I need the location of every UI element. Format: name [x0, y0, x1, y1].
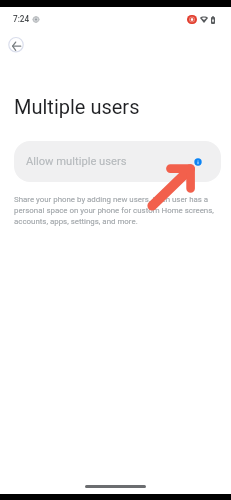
staticText: Allow multiple users: [26, 155, 127, 168]
staticText: Share your phone by adding new users. Ea…: [14, 195, 218, 226]
button[interactable]: Back: [4, 32, 28, 56]
button[interactable]: Allow multiple users: [14, 141, 221, 182]
staticText: 7:24: [13, 14, 30, 24]
staticText: Multiple users: [14, 95, 140, 118]
